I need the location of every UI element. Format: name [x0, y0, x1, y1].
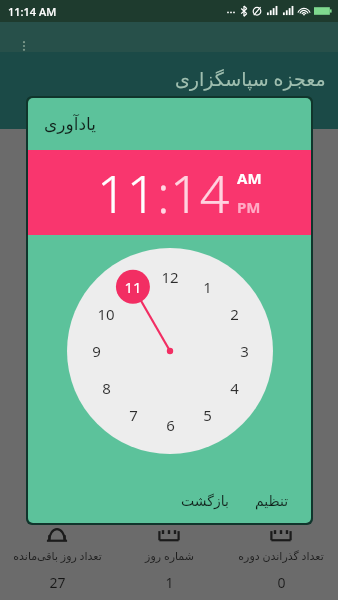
- staticText: معجزه سپاسگزاری: [175, 66, 326, 92]
- staticText: 27: [49, 573, 66, 592]
- staticText: :: [157, 157, 170, 228]
- button[interactable]: More options: [12, 34, 36, 58]
- button[interactable]: AM: [237, 168, 262, 188]
- button[interactable]: شماره روز: [114, 520, 224, 592]
- staticText: 6: [166, 415, 175, 435]
- staticText: 1: [203, 277, 212, 297]
- button[interactable]: تعداد گذراندن دوره: [226, 520, 336, 592]
- staticText: 4: [230, 378, 239, 398]
- staticText: 10: [97, 304, 115, 324]
- staticText: 12: [161, 267, 179, 287]
- staticText: 7: [129, 405, 138, 425]
- staticText: شماره روز: [145, 548, 194, 563]
- staticText: 0: [277, 573, 286, 592]
- staticText: 2: [230, 304, 239, 324]
- staticText: 5: [203, 405, 212, 425]
- staticText: تعداد گذراندن دوره: [238, 548, 324, 563]
- button[interactable]: 14: [170, 157, 230, 228]
- button[interactable]: تعداد روز باقی‌مانده: [2, 520, 112, 592]
- button[interactable]: بازگشت: [171, 487, 239, 515]
- staticText: 11: [124, 277, 142, 297]
- staticText: 1: [165, 573, 174, 592]
- staticText: 11:14 AM: [8, 4, 57, 19]
- staticText: 8: [102, 378, 111, 398]
- staticText: تعداد روز باقی‌مانده: [13, 548, 102, 563]
- staticText: تنظیم: [255, 493, 289, 509]
- staticText: 9: [92, 341, 101, 361]
- button[interactable]: PM: [237, 197, 261, 217]
- staticText: بازگشت: [181, 493, 229, 509]
- button[interactable]: تنظیم: [245, 487, 299, 515]
- staticText: یادآوری: [44, 114, 96, 134]
- staticText: 3: [240, 341, 249, 361]
- button[interactable]: 11: [97, 157, 157, 228]
